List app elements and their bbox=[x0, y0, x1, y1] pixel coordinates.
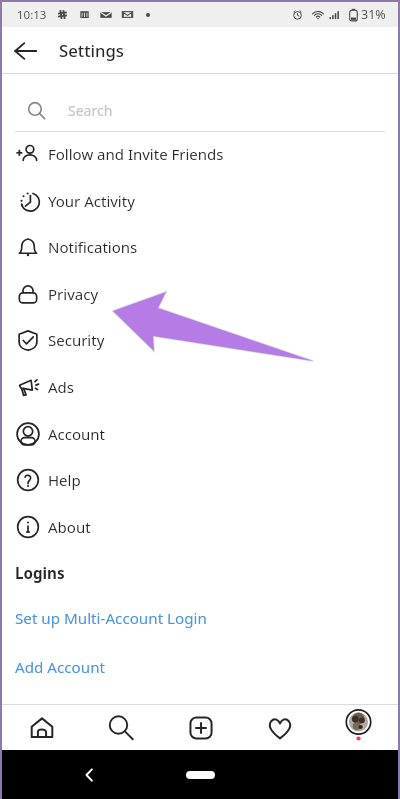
staticText: Your Activity bbox=[48, 191, 135, 211]
button[interactable]: Account bbox=[2, 411, 398, 457]
button[interactable]: Notifications bbox=[2, 224, 398, 270]
button[interactable]: Privacy bbox=[2, 271, 398, 317]
button[interactable]: About bbox=[2, 504, 398, 550]
button[interactable]: New Post bbox=[161, 705, 240, 750]
staticText: Search bbox=[68, 101, 113, 120]
staticText: Privacy bbox=[48, 284, 99, 304]
staticText: 10:13 bbox=[17, 7, 47, 23]
button[interactable]: Activity bbox=[240, 705, 319, 750]
button[interactable]: Search bbox=[82, 705, 161, 750]
staticText: Set up Multi-Account Login bbox=[15, 608, 207, 629]
button[interactable]: Back bbox=[2, 27, 48, 74]
staticText: 31% bbox=[361, 6, 386, 23]
staticText: Logins bbox=[15, 563, 65, 584]
button[interactable]: Help bbox=[2, 457, 398, 503]
button[interactable]: Follow and Invite Friends bbox=[2, 131, 398, 177]
staticText: Notifications bbox=[48, 237, 138, 257]
staticText: About bbox=[48, 517, 91, 537]
staticText: Follow and Invite Friends bbox=[48, 144, 224, 164]
staticText: Account bbox=[48, 424, 106, 444]
staticText: Ads bbox=[48, 377, 74, 397]
button[interactable]: Set up Multi-Account Login bbox=[2, 595, 398, 641]
staticText: Settings bbox=[59, 39, 124, 62]
button[interactable]: Security bbox=[2, 317, 398, 363]
button[interactable]: Search bbox=[2, 74, 398, 131]
button[interactable]: Home bbox=[2, 705, 82, 750]
button[interactable]: Your Activity bbox=[2, 178, 398, 224]
button[interactable]: Profile bbox=[319, 705, 398, 750]
button[interactable]: Ads bbox=[2, 364, 398, 410]
staticText: Security bbox=[48, 330, 105, 350]
staticText: Add Account bbox=[15, 657, 106, 678]
staticText: Help bbox=[48, 470, 81, 490]
button[interactable]: Add Account bbox=[2, 644, 398, 690]
